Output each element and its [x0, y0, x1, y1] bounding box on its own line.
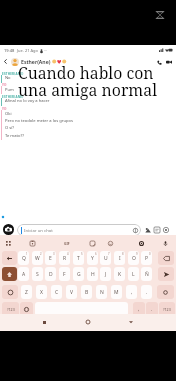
button[interactable]: Profile photo	[11, 58, 19, 66]
button[interactable]: I	[114, 251, 125, 265]
button[interactable]: GIF	[62, 238, 72, 248]
button[interactable]: S	[32, 267, 43, 281]
button[interactable]: G	[73, 267, 84, 281]
button[interactable]: T	[73, 251, 84, 265]
staticText: Esther(Ane)	[21, 58, 51, 65]
button[interactable]: Open camera	[3, 224, 14, 235]
staticText: YO	[2, 107, 7, 111]
staticText: K	[118, 271, 122, 278]
staticText: D	[49, 271, 53, 278]
staticText: Z	[25, 289, 28, 296]
button[interactable]: Stickers	[132, 227, 139, 234]
button[interactable]: Video call	[164, 57, 174, 67]
button[interactable]: CapCut watermark	[155, 11, 165, 19]
staticText: 8	[122, 252, 124, 256]
staticText: Pum	[5, 87, 14, 93]
button[interactable]: Sticker pack	[152, 225, 161, 234]
staticText: ESTHER(ANE)	[2, 72, 24, 76]
button[interactable]: C	[51, 285, 62, 299]
button[interactable]: Ñ	[141, 267, 152, 281]
button[interactable]: L	[128, 267, 139, 281]
button[interactable]: Home	[83, 317, 93, 327]
button[interactable]: ,	[126, 285, 137, 299]
staticText: Afinal no lo voy a hacer	[5, 98, 50, 104]
button[interactable]: W	[32, 251, 43, 265]
staticText: X	[40, 289, 43, 296]
button[interactable]: Esther(Ane)	[21, 58, 154, 65]
button[interactable]: Recent apps	[39, 317, 49, 327]
button[interactable]: Voice message	[161, 225, 170, 234]
button[interactable]: J	[100, 267, 111, 281]
button[interactable]: V	[66, 285, 77, 299]
button[interactable]: U	[100, 251, 111, 265]
button[interactable]: Stickers	[87, 238, 97, 248]
staticText: V	[70, 289, 74, 296]
staticText: Q	[22, 255, 26, 262]
staticText: una amiga normal	[18, 79, 158, 101]
staticText: Jue. 21 Ago	[17, 48, 38, 53]
staticText: C	[55, 289, 59, 296]
button[interactable]: Voice input	[160, 238, 170, 248]
button[interactable]: K	[114, 267, 125, 281]
staticText: R	[63, 255, 67, 262]
staticText: 9	[136, 252, 138, 256]
button[interactable]: Backspace	[158, 251, 174, 265]
button[interactable]: Emoji	[20, 302, 33, 316]
button[interactable]: Tab	[2, 251, 17, 265]
button[interactable]: D	[45, 267, 56, 281]
staticText: B	[85, 289, 89, 296]
staticText: .	[146, 289, 148, 296]
button[interactable]: F	[59, 267, 70, 281]
staticText: 2	[40, 252, 42, 256]
button[interactable]: Symbols	[2, 302, 19, 316]
button[interactable]: Emoji	[105, 238, 115, 248]
button[interactable]: Back	[126, 317, 136, 327]
button[interactable]: P	[141, 251, 152, 265]
button[interactable]: Symbols 2	[159, 302, 175, 316]
button[interactable]: Settings	[136, 238, 146, 248]
button[interactable]: Voice call	[154, 57, 164, 67]
staticText: ,	[131, 289, 133, 296]
button[interactable]: Send	[158, 267, 174, 281]
button[interactable]: E	[45, 251, 56, 265]
button[interactable]: Back	[1, 57, 10, 66]
staticText: Cuando hablo con	[18, 62, 154, 84]
staticText: L	[132, 271, 135, 278]
button[interactable]: O	[128, 251, 139, 265]
button[interactable]: Shift	[2, 267, 17, 281]
staticText: S	[36, 271, 39, 278]
button[interactable]: Iniciar un chat	[17, 224, 141, 236]
staticText: Oki	[5, 111, 12, 117]
staticText: J	[105, 271, 107, 278]
button[interactable]: M	[111, 285, 122, 299]
button[interactable]: Clipboard	[27, 238, 37, 248]
staticText: ···	[44, 48, 48, 53]
staticText: G	[77, 271, 81, 278]
button[interactable]: Emoji keyboard	[2, 285, 18, 299]
staticText: 4	[67, 252, 69, 256]
button[interactable]: H	[87, 267, 98, 281]
staticText: T	[77, 255, 80, 262]
button[interactable]: A	[18, 267, 29, 281]
button[interactable]: .	[141, 285, 152, 299]
button[interactable]: N	[96, 285, 107, 299]
button[interactable]: B	[81, 285, 92, 299]
staticText: 0	[149, 252, 151, 256]
staticText: H	[91, 271, 95, 278]
button[interactable]: Space	[35, 302, 128, 316]
staticText: 3	[53, 252, 55, 256]
button[interactable]: Z	[21, 285, 32, 299]
button[interactable]: Q	[18, 251, 29, 265]
button[interactable]: Keyboard menu	[3, 238, 13, 248]
staticText: YO	[2, 83, 7, 87]
button[interactable]: Delete	[157, 285, 174, 299]
button[interactable]: Send GIF	[143, 225, 152, 234]
button[interactable]: X	[36, 285, 47, 299]
button[interactable]: Y	[87, 251, 98, 265]
staticText: U	[104, 255, 108, 262]
staticText: 19:48	[4, 48, 15, 53]
button[interactable]: R	[59, 251, 70, 265]
staticText: I	[119, 255, 121, 262]
button[interactable]: Comma	[133, 302, 145, 316]
button[interactable]: Period	[146, 302, 158, 316]
